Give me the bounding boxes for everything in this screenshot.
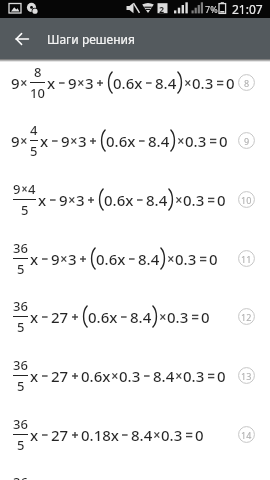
- staticText: 0.3: [161, 425, 183, 445]
- staticText: 0.6x: [96, 249, 126, 269]
- staticText: 3: [68, 249, 77, 269]
- staticText: 36: [13, 473, 28, 480]
- staticText: 0: [219, 131, 228, 151]
- staticText: 9: [13, 180, 21, 198]
- staticText: 14: [241, 429, 252, 441]
- staticText: 0: [217, 190, 226, 210]
- staticText: 8.4: [138, 249, 160, 269]
- staticText: 8.4: [148, 131, 170, 151]
- staticText: 5: [17, 377, 25, 395]
- button[interactable]: 36: [0, 405, 270, 464]
- staticText: 5: [17, 260, 25, 278]
- staticText: 36: [13, 356, 28, 374]
- staticText: 0.3: [185, 131, 207, 151]
- staticText: 27: [51, 366, 69, 386]
- staticText: 0.6x: [106, 131, 136, 151]
- staticText: 8.4: [130, 307, 152, 327]
- staticText: 8.4: [146, 190, 168, 210]
- staticText: 9: [11, 131, 20, 151]
- staticText: 12: [241, 311, 252, 323]
- staticText: 27: [51, 307, 69, 327]
- staticText: 9: [61, 131, 70, 151]
- button[interactable]: 9: [0, 170, 270, 229]
- staticText: 0.3: [175, 249, 197, 269]
- staticText: x: [30, 425, 39, 445]
- staticText: 0.6x: [113, 73, 143, 93]
- staticText: 9: [244, 135, 250, 147]
- staticText: 9: [51, 249, 60, 269]
- staticText: x: [30, 307, 39, 327]
- staticText: 3: [76, 190, 85, 210]
- staticText: 5: [30, 142, 38, 160]
- button[interactable]: Back: [8, 25, 36, 53]
- button[interactable]: 36: [0, 346, 270, 405]
- staticText: 10: [30, 84, 45, 102]
- staticText: 5: [17, 436, 25, 454]
- staticText: 8.4: [155, 73, 177, 93]
- button[interactable]: 36: [0, 463, 270, 480]
- staticText: 0.3: [183, 190, 205, 210]
- staticText: x: [38, 190, 47, 210]
- staticText: 0: [226, 73, 235, 93]
- staticText: 9: [59, 190, 68, 210]
- staticText: 3: [78, 131, 87, 151]
- staticText: 0.6x: [88, 307, 118, 327]
- button[interactable]: 9: [0, 111, 270, 170]
- staticText: 4: [30, 121, 38, 139]
- staticText: 2: [159, 3, 165, 15]
- staticText: 0.3: [119, 366, 141, 386]
- staticText: 0: [217, 366, 226, 386]
- staticText: 4: [28, 180, 36, 198]
- staticText: x: [30, 249, 39, 269]
- staticText: 0.3: [167, 307, 189, 327]
- staticText: 8: [34, 63, 42, 81]
- staticText: 0.6x: [81, 366, 111, 386]
- staticText: 0.3: [183, 366, 205, 386]
- staticText: 3: [85, 73, 94, 93]
- staticText: 0: [195, 425, 204, 445]
- staticText: x: [40, 131, 49, 151]
- staticText: 5: [21, 201, 29, 219]
- staticText: 13: [241, 370, 252, 382]
- button[interactable]: 36: [0, 287, 270, 346]
- staticText: 5: [17, 318, 25, 336]
- staticText: 8: [244, 77, 250, 89]
- staticText: 7%: [205, 3, 218, 15]
- staticText: 0.6x: [104, 190, 134, 210]
- staticText: 0.3: [192, 73, 214, 93]
- staticText: 0: [201, 307, 210, 327]
- staticText: 0.18x: [81, 425, 119, 445]
- staticText: x: [47, 73, 56, 93]
- staticText: 10: [241, 194, 252, 206]
- staticText: 9: [11, 73, 20, 93]
- staticText: 9: [68, 73, 77, 93]
- staticText: 0: [209, 249, 218, 269]
- staticText: 8.4: [131, 425, 153, 445]
- staticText: 11: [241, 253, 252, 265]
- staticText: 36: [13, 415, 28, 433]
- staticText: 8.4: [153, 366, 175, 386]
- staticText: x: [30, 366, 39, 386]
- staticText: Шаги решения: [47, 31, 135, 47]
- staticText: 21:07: [232, 1, 263, 17]
- button[interactable]: 36: [0, 229, 270, 288]
- staticText: 36: [13, 297, 28, 315]
- button[interactable]: 9: [0, 53, 270, 112]
- staticText: 36: [13, 239, 28, 257]
- staticText: 27: [51, 425, 69, 445]
